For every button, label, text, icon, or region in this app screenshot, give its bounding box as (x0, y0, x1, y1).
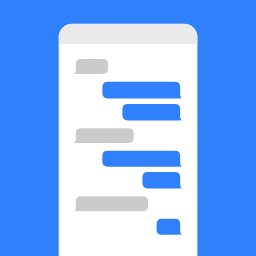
button[interactable]: Messaging conversation illustration (0, 0, 256, 256)
